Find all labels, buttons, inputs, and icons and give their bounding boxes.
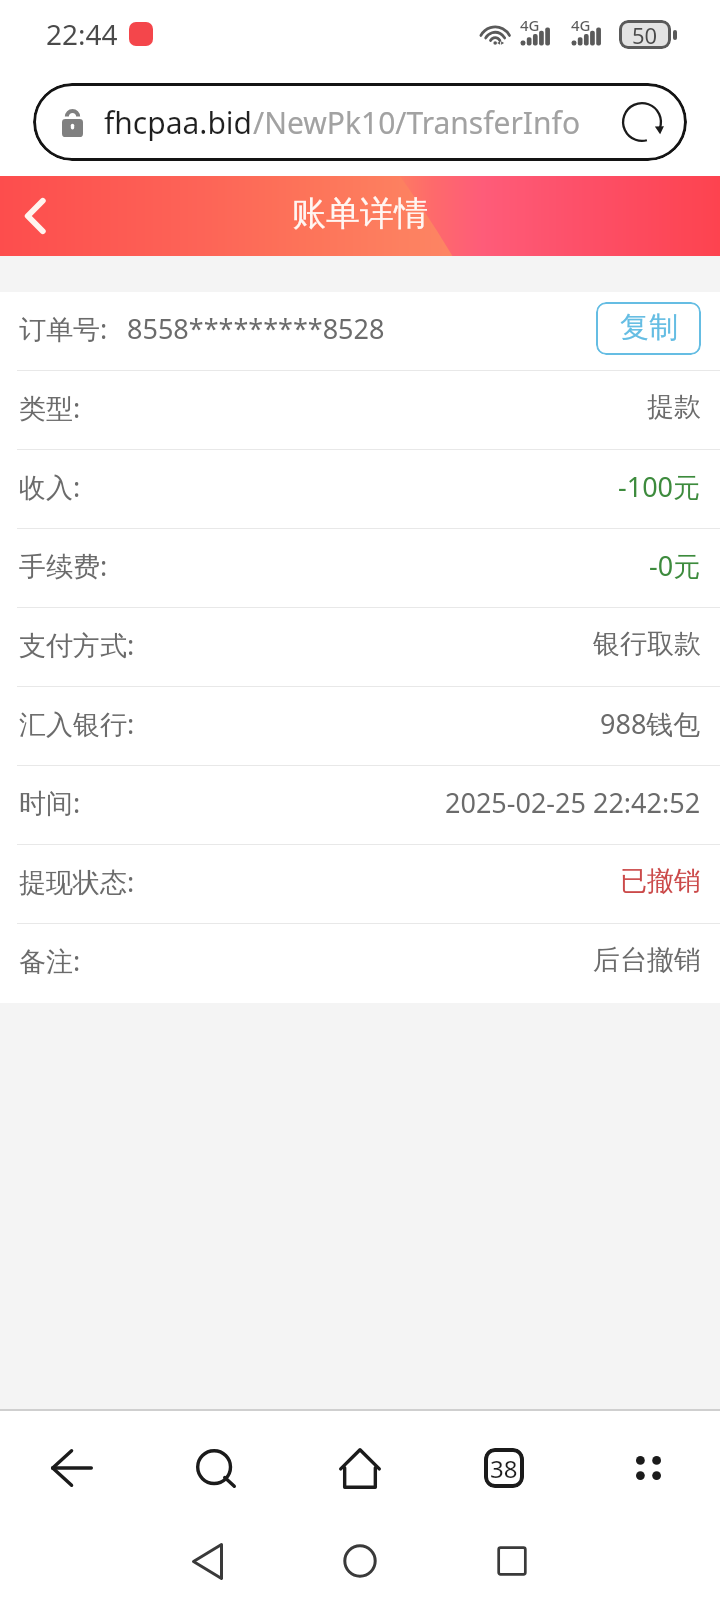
staticText: 银行取款 [593, 627, 701, 661]
button[interactable]: fhcpaa.bid [33, 83, 687, 161]
staticText: /NewPk10/TransferInfo [253, 102, 581, 143]
staticText: 汇入银行: [19, 705, 135, 742]
staticText: 手续费: [19, 547, 108, 584]
staticText: 后台撤销 [593, 943, 701, 977]
staticText: 复制 [620, 309, 678, 346]
button[interactable]: Home [315, 1522, 405, 1600]
staticText: 38 [490, 1452, 518, 1485]
staticText: -0元 [649, 547, 701, 584]
staticText: 8558*********8528 [127, 310, 385, 347]
staticText: 订单号: [19, 310, 108, 347]
button[interactable]: Back [0, 176, 70, 256]
staticText: 4G [520, 15, 540, 35]
staticText: 已撤销 [620, 864, 701, 898]
staticText: 支付方式: [19, 626, 135, 663]
staticText: -100元 [618, 468, 701, 505]
staticText: 22:44 [46, 15, 118, 53]
button[interactable]: Tabs [432, 1416, 576, 1520]
button[interactable]: Recents [467, 1522, 557, 1600]
button[interactable]: Search [144, 1416, 288, 1520]
staticText: 收入: [19, 468, 81, 505]
staticText: 提款 [647, 390, 701, 424]
staticText: 备注: [19, 942, 81, 979]
staticText: 时间: [19, 784, 81, 821]
button[interactable]: More [576, 1416, 720, 1520]
staticText: 提现状态: [19, 863, 135, 900]
staticText: fhcpaa.bid [104, 102, 253, 143]
button[interactable]: Back [162, 1522, 252, 1600]
staticText: 4G [571, 15, 591, 35]
button[interactable]: Home [288, 1416, 432, 1520]
staticText: 类型: [19, 389, 81, 426]
button[interactable]: 复制 [596, 302, 701, 355]
button[interactable]: Back [0, 1416, 144, 1520]
staticText: 50 [632, 20, 658, 49]
staticText: 2025-02-25 22:42:52 [445, 784, 701, 821]
staticText: 988钱包 [600, 705, 701, 742]
staticText: 账单详情 [292, 192, 428, 235]
